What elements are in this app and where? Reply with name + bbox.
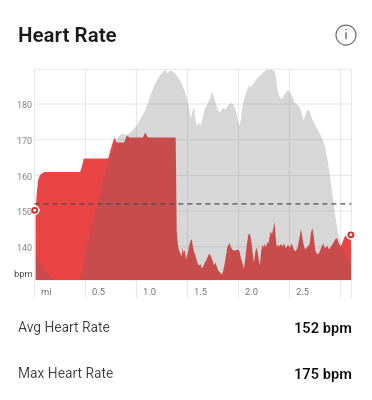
staticText: 180 xyxy=(17,100,33,111)
staticText: 150 xyxy=(17,207,33,218)
staticText: 1.0 xyxy=(143,286,157,297)
staticText: 152 bpm xyxy=(294,319,352,336)
staticText: Avg Heart Rate xyxy=(18,319,110,335)
staticText: 0.5 xyxy=(92,286,106,297)
staticText: 2.5 xyxy=(296,286,310,297)
staticText: 1.5 xyxy=(194,286,208,297)
staticText: 175 bpm xyxy=(294,365,352,382)
staticText: 170 xyxy=(17,136,33,147)
staticText: 140 xyxy=(17,243,33,254)
staticText: Max Heart Rate xyxy=(18,365,114,381)
staticText: bpm xyxy=(14,268,33,279)
staticText: 160 xyxy=(17,172,33,183)
staticText: 2.0 xyxy=(245,286,259,297)
staticText: mi xyxy=(41,286,52,297)
button[interactable]: Avg Heart Rate xyxy=(0,304,372,350)
button[interactable]: Max Heart Rate xyxy=(0,350,372,396)
button[interactable]: Info xyxy=(330,19,362,51)
staticText: Heart Rate xyxy=(18,23,117,47)
